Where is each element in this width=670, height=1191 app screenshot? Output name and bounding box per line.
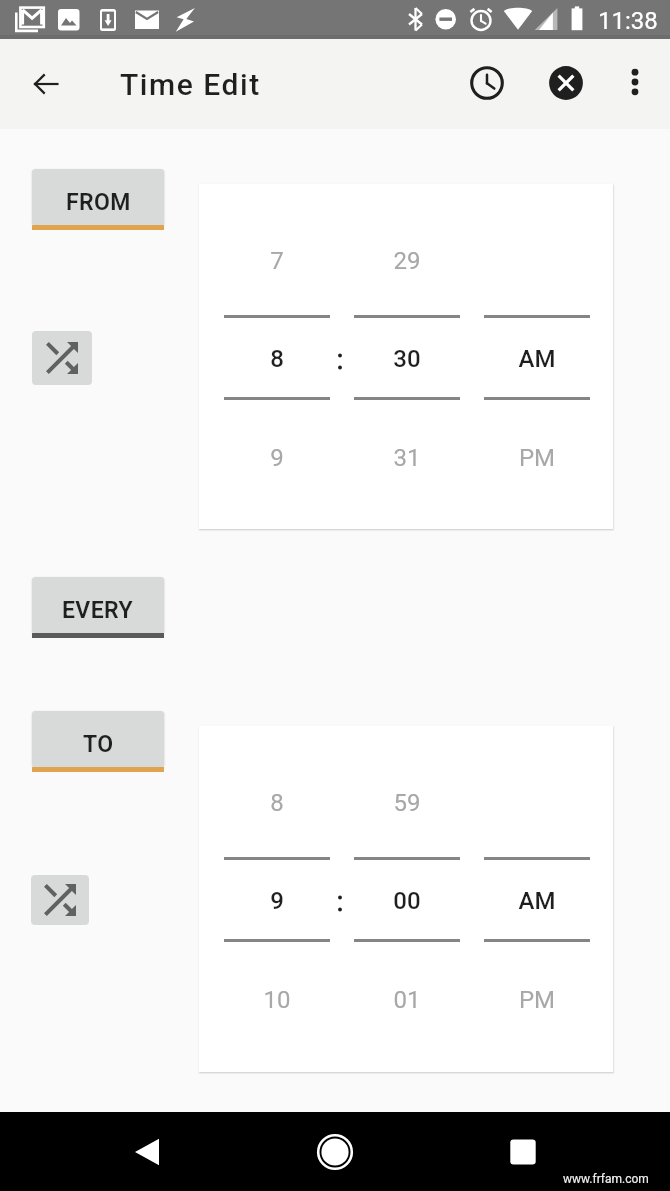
button[interactable]: 8 bbox=[224, 789, 330, 817]
button[interactable]: 9 bbox=[224, 887, 330, 915]
button[interactable]: More options bbox=[612, 59, 658, 105]
button[interactable]: 59 bbox=[354, 789, 460, 817]
button[interactable]: TO bbox=[32, 711, 164, 772]
button[interactable]: 00 bbox=[354, 887, 460, 915]
staticText: Time Edit bbox=[120, 67, 261, 102]
button[interactable]: Cancel bbox=[542, 59, 590, 107]
button[interactable]: Set time bbox=[463, 59, 511, 107]
button[interactable]: 01 bbox=[354, 986, 460, 1014]
button[interactable]: 10 bbox=[224, 986, 330, 1014]
staticText: 11:38 bbox=[598, 7, 658, 35]
button[interactable]: Back bbox=[122, 1127, 172, 1177]
button[interactable]: AM bbox=[484, 887, 590, 915]
button[interactable]: 7 bbox=[224, 247, 330, 275]
button[interactable]: 9 bbox=[224, 444, 330, 472]
staticText: EVERY bbox=[62, 597, 134, 624]
button[interactable]: AM bbox=[484, 345, 590, 373]
button[interactable]: Swap times bbox=[32, 331, 92, 385]
button[interactable]: PM bbox=[484, 986, 590, 1014]
button[interactable]: FROM bbox=[32, 169, 164, 230]
button[interactable]: Back bbox=[22, 60, 70, 108]
button[interactable]: 30 bbox=[354, 345, 460, 373]
button[interactable]: 8 bbox=[224, 345, 330, 373]
button[interactable]: Recents bbox=[498, 1127, 548, 1177]
staticText: FROM bbox=[66, 189, 131, 216]
button[interactable]: 31 bbox=[354, 444, 460, 472]
button[interactable]: EVERY bbox=[32, 577, 164, 638]
button[interactable]: 29 bbox=[354, 247, 460, 275]
staticText: TO bbox=[83, 731, 114, 758]
button[interactable]: PM bbox=[484, 444, 590, 472]
button[interactable]: Swap times bbox=[31, 875, 89, 925]
button[interactable]: Home bbox=[310, 1127, 360, 1177]
staticText: www.frfam.com bbox=[563, 1172, 649, 1186]
